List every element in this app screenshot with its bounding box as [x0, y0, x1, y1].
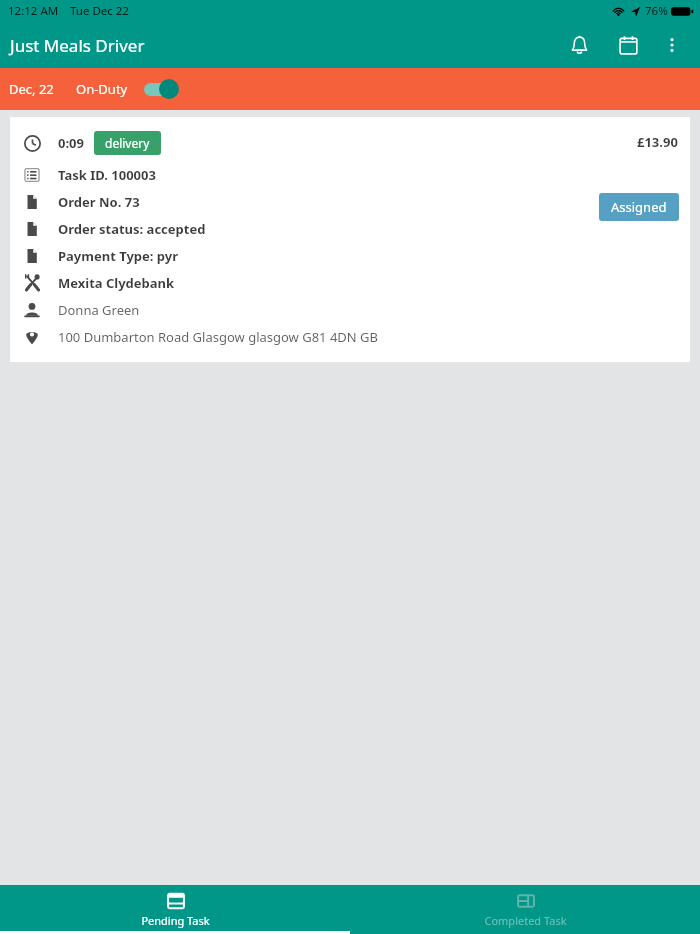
staticText: £13.90 — [637, 133, 678, 151]
staticText: Order status: accepted — [58, 220, 206, 238]
staticText: Order No. 73 — [58, 193, 140, 211]
staticText: Assigned — [611, 198, 667, 216]
staticText: Tue Dec 22 — [70, 3, 129, 19]
staticText: Completed Task — [484, 913, 567, 928]
button[interactable]: Pending Task — [0, 885, 350, 934]
staticText: Just Meals Driver — [10, 34, 145, 57]
staticText: 100 Dumbarton Road Glasgow glasgow G81 4… — [58, 328, 379, 346]
staticText: Dec, 22 — [9, 80, 54, 98]
button[interactable]: Assigned — [599, 193, 679, 221]
staticText: On-Duty — [76, 80, 128, 98]
staticText: 0:09 — [58, 134, 84, 152]
staticText: delivery — [105, 135, 150, 151]
staticText: Donna Green — [58, 301, 140, 319]
staticText: 76% — [645, 3, 668, 19]
button[interactable]: More options — [652, 25, 692, 65]
button[interactable]: On duty toggle — [142, 76, 182, 102]
button[interactable]: 0:09 — [10, 117, 690, 362]
button[interactable]: Notifications — [557, 23, 601, 67]
staticText: Payment Type: pyr — [58, 247, 179, 265]
staticText: Mexita Clydebank — [58, 274, 175, 292]
staticText: 12:12 AM — [8, 3, 59, 19]
staticText: Pending Task — [141, 913, 210, 928]
staticText: Task ID. 100003 — [58, 166, 156, 184]
button[interactable]: Calendar — [606, 23, 650, 67]
button[interactable]: Completed Task — [350, 885, 700, 934]
